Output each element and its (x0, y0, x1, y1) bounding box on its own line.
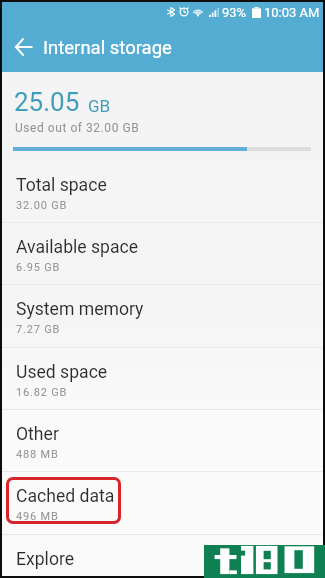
staticText: 488 MB (16, 448, 59, 461)
staticText: Available space (16, 237, 139, 258)
staticText: 6.95 GB (16, 261, 61, 274)
staticText: GB (88, 96, 111, 116)
staticText: 7.27 GB (16, 323, 61, 336)
staticText: 32.00 GB (16, 199, 68, 212)
button[interactable]: Total space (2, 161, 323, 223)
staticText: Internal storage (43, 37, 172, 59)
button[interactable]: Cached data (2, 472, 323, 535)
staticText: 25.05 (14, 87, 80, 117)
staticText: 10:03 AM (264, 5, 320, 20)
staticText: Other (16, 424, 59, 445)
button[interactable]: Available space (2, 223, 323, 285)
staticText: System memory (16, 299, 144, 320)
button[interactable]: Other (2, 410, 323, 472)
staticText: Explore (16, 549, 75, 570)
staticText: 93% (222, 5, 247, 20)
staticText: Cached data (16, 486, 115, 507)
button[interactable]: Navigate up (2, 23, 45, 71)
button[interactable]: Explore (2, 535, 323, 575)
button[interactable]: System memory (2, 285, 323, 348)
staticText: Used out of 32.00 GB (15, 121, 140, 135)
staticText: Used space (16, 362, 108, 383)
staticText: 16.82 GB (16, 386, 68, 399)
button[interactable]: Used space (2, 348, 323, 410)
staticText: 496 MB (16, 510, 59, 523)
staticText: Total space (16, 175, 107, 196)
